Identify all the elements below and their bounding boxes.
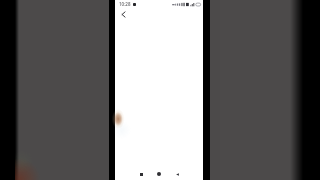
button[interactable]: Recents: [136, 169, 146, 179]
button[interactable]: Back: [117, 8, 129, 20]
staticText: 10:28: [119, 1, 131, 7]
button[interactable]: Home: [154, 169, 164, 179]
button[interactable]: Back: [172, 169, 182, 179]
